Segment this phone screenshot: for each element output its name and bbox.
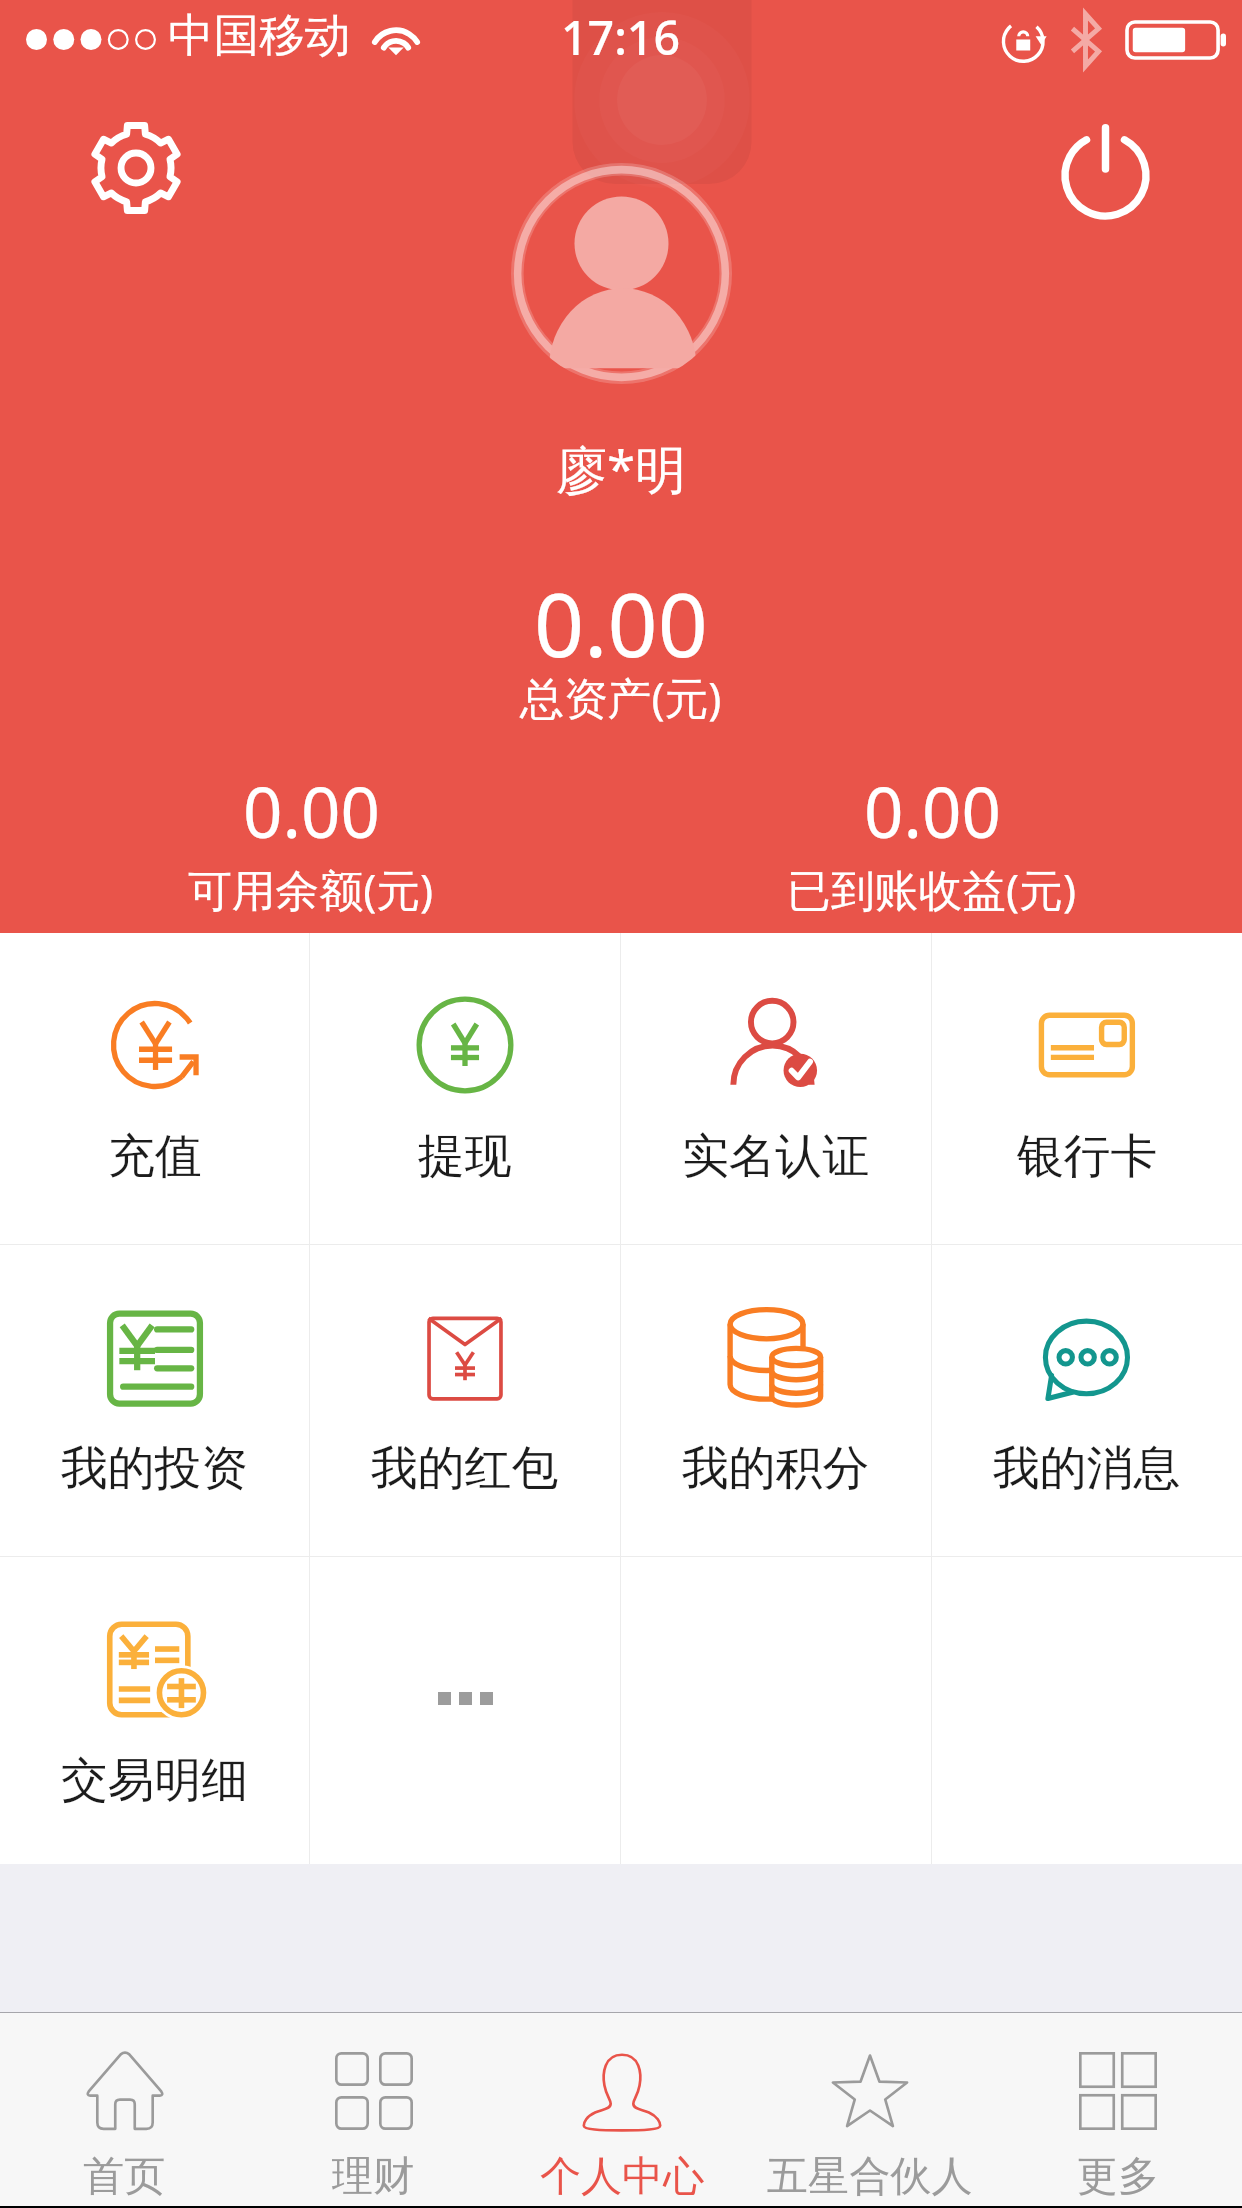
staticText: 我的积分 (682, 1439, 870, 1498)
staticText: 理财 (332, 2150, 415, 2202)
button[interactable]: 我的投资 (0, 1245, 309, 1556)
staticText: 廖*明 (556, 433, 687, 503)
staticText: 五星合伙人 (767, 2150, 973, 2202)
staticText: 已到账收益(元) (787, 859, 1077, 919)
staticText: 更多 (1077, 2150, 1160, 2202)
staticText: 17:16 (561, 5, 681, 68)
staticText: 交易明细 (61, 1751, 249, 1810)
staticText: 我的红包 (371, 1439, 559, 1498)
staticText: 实名认证 (682, 1127, 870, 1186)
button[interactable]: 首页 (0, 2013, 249, 2206)
staticText: 充值 (108, 1127, 202, 1186)
button[interactable]: 理财 (249, 2013, 498, 2206)
button[interactable]: 更多 (994, 2013, 1242, 2206)
staticText: 我的投资 (61, 1439, 249, 1498)
staticText: 0.00 (243, 764, 380, 858)
button[interactable]: 我的红包 (310, 1245, 620, 1556)
staticText: 我的消息 (993, 1439, 1181, 1498)
button[interactable]: 提现 (310, 933, 620, 1244)
button[interactable]: Power (1059, 123, 1152, 216)
staticText: 提现 (418, 1127, 512, 1186)
button[interactable]: More (310, 1557, 620, 1864)
button[interactable]: Settings (88, 120, 184, 216)
button[interactable]: 我的积分 (621, 1245, 931, 1556)
button[interactable]: 实名认证 (621, 933, 931, 1244)
button[interactable]: 五星合伙人 (746, 2013, 994, 2206)
button[interactable]: 我的消息 (932, 1245, 1242, 1556)
button[interactable]: 交易明细 (0, 1557, 309, 1864)
button[interactable]: 个人中心 (498, 2013, 746, 2206)
staticText: 0.00 (864, 764, 1001, 858)
staticText: 个人中心 (540, 2150, 705, 2202)
staticText: 银行卡 (1017, 1127, 1158, 1186)
staticText: 首页 (83, 2150, 166, 2202)
staticText: 总资产(元) (520, 667, 722, 727)
button[interactable]: 银行卡 (932, 933, 1242, 1244)
button[interactable]: 充值 (0, 933, 309, 1244)
staticText: 可用余额(元) (188, 859, 434, 919)
button[interactable]: Avatar (511, 163, 732, 384)
staticText: 中国移动 (168, 7, 351, 64)
staticText: 0.00 (534, 563, 708, 682)
